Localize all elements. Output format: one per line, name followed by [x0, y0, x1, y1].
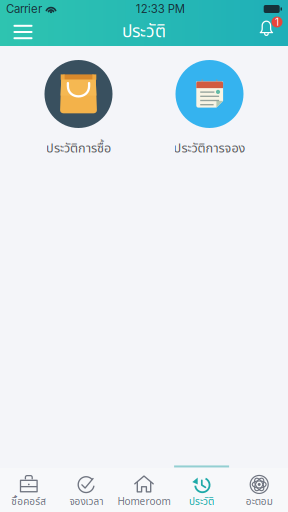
button[interactable]: ประวัติการซื้อ: [13, 60, 144, 158]
button[interactable]: ซื้อคอร์ส: [0, 465, 58, 512]
staticText: ประวัติการจอง: [173, 139, 245, 158]
staticText: อะตอม: [246, 494, 273, 509]
staticText: 1: [275, 16, 279, 28]
staticText: ประวัติการซื้อ: [46, 139, 111, 158]
button[interactable]: Menu: [0, 18, 45, 46]
button[interactable]: อะตอม: [230, 465, 288, 512]
staticText: 12:33 PM: [136, 2, 185, 16]
button[interactable]: Homeroom: [115, 465, 173, 512]
staticText: ซื้อคอร์ส: [11, 494, 46, 509]
staticText: จองเวลา: [69, 494, 103, 509]
staticText: ประวัติ: [122, 19, 166, 45]
staticText: ประวัติ: [189, 494, 214, 509]
staticText: Carrier: [6, 2, 42, 16]
button[interactable]: ประวัติการจอง: [144, 60, 275, 158]
button[interactable]: จองเวลา: [58, 465, 115, 512]
staticText: Homeroom: [117, 494, 170, 509]
button[interactable]: ประวัติ: [173, 465, 230, 512]
button[interactable]: Notifications: [251, 20, 288, 44]
